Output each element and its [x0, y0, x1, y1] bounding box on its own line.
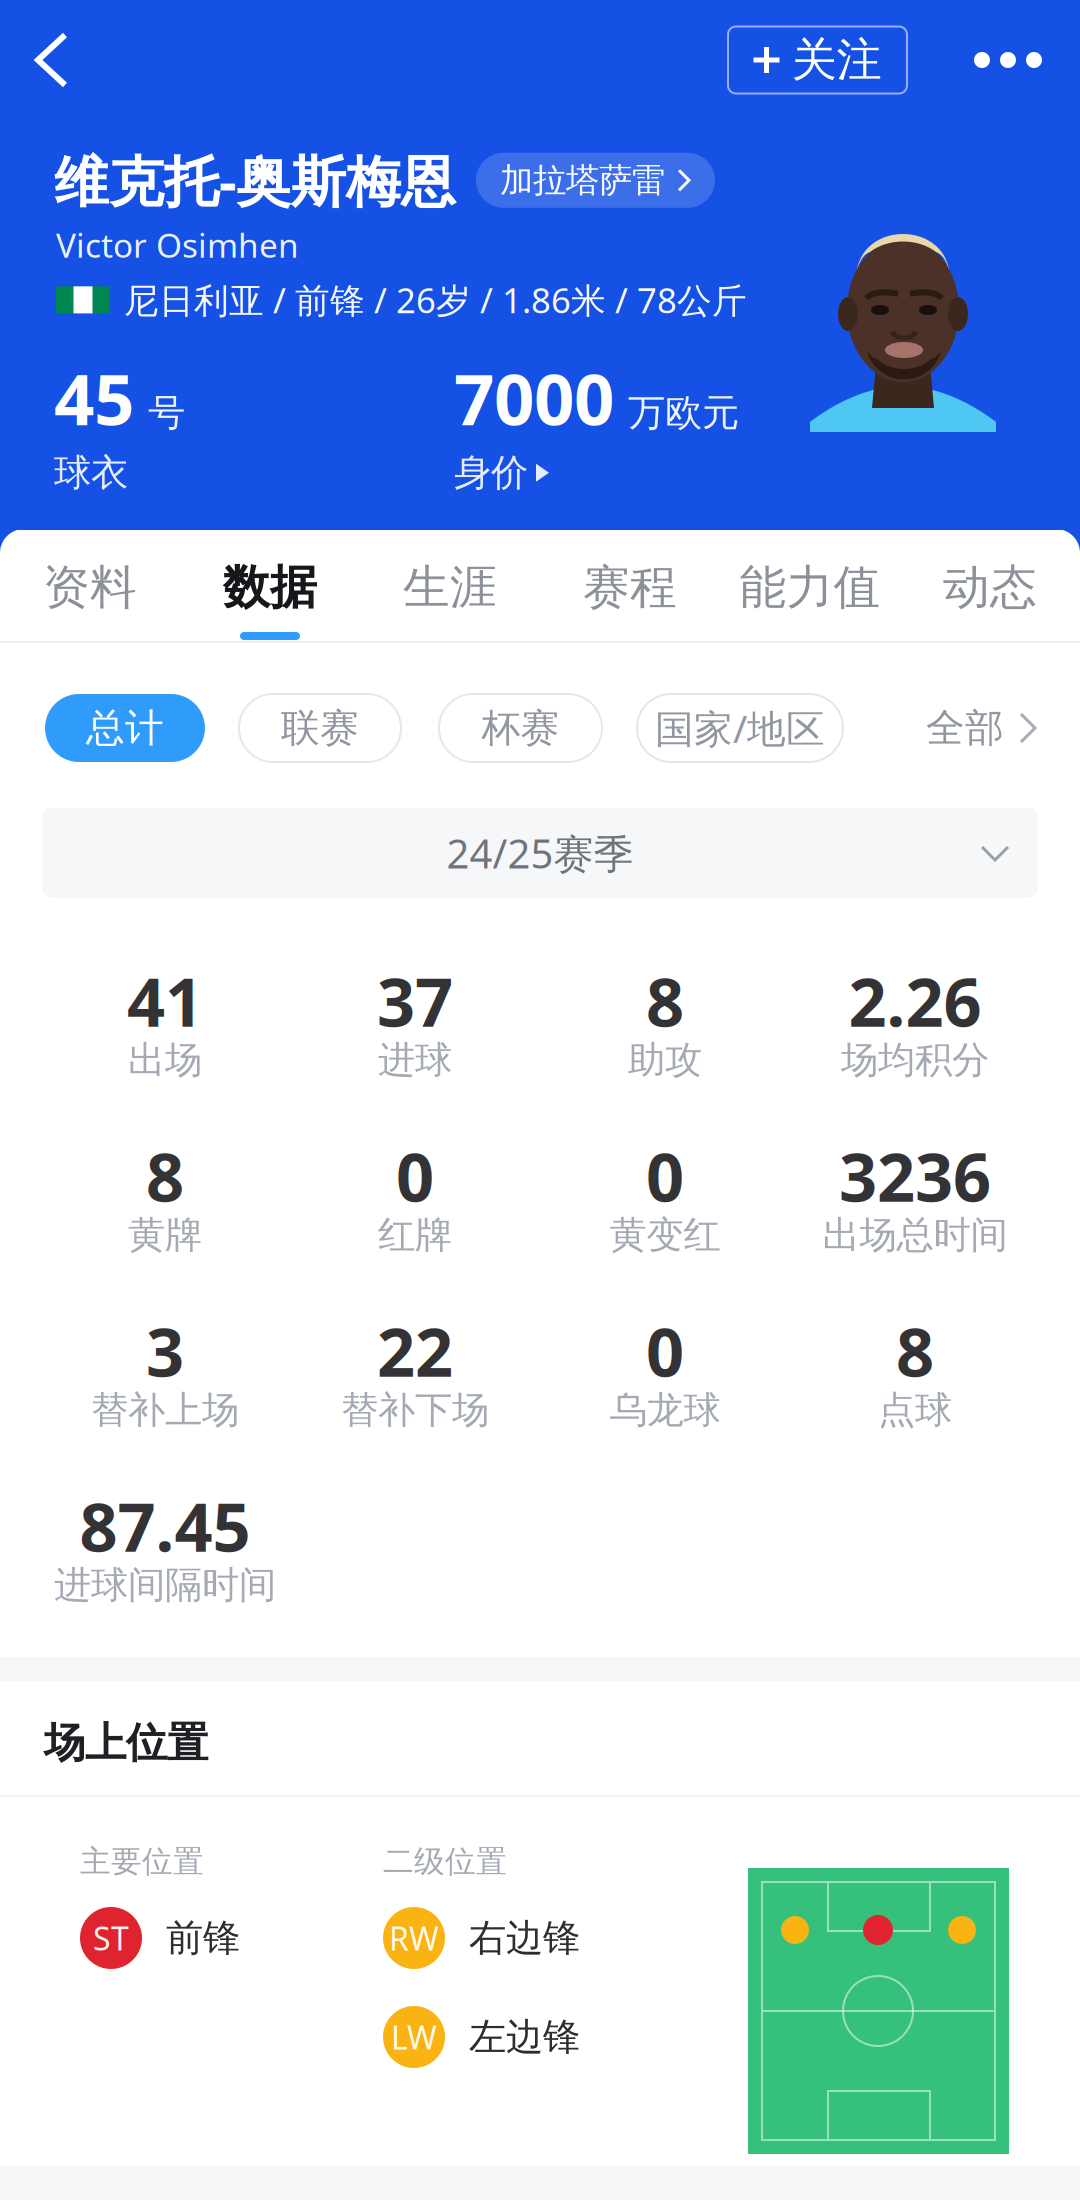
button[interactable]: 关注 [728, 26, 907, 93]
staticText: 41 [127, 957, 203, 1045]
staticText: 数据 [223, 559, 317, 616]
staticText: 进球间隔时间 [54, 1562, 276, 1608]
staticText: 主要位置 [80, 1843, 204, 1880]
button[interactable]: More [953, 24, 1063, 96]
staticText: LW [391, 2016, 437, 2058]
staticText: 关注 [791, 32, 881, 88]
button[interactable]: RW [383, 1907, 580, 1969]
button[interactable]: 联赛 [239, 694, 401, 762]
staticText: 能力值 [739, 559, 880, 616]
staticText: 尼日利亚 / 前锋 / 26岁 / 1.86米 / 78公斤 [124, 277, 747, 323]
staticText: 右边锋 [469, 1915, 580, 1961]
staticText: 场上位置 [44, 1718, 208, 1768]
button[interactable]: 总计 [45, 694, 205, 762]
staticText: 黄牌 [128, 1212, 202, 1258]
staticText: 0 [396, 1132, 434, 1220]
button[interactable]: 7000 [454, 351, 739, 491]
staticText: 8 [646, 957, 684, 1045]
staticText: 22 [377, 1307, 453, 1395]
staticText: 8 [896, 1307, 934, 1395]
button[interactable]: 资料 [0, 530, 180, 641]
staticText: Victor Osimhen [56, 223, 299, 267]
staticText: 资料 [43, 559, 137, 616]
staticText: 45 [54, 351, 134, 445]
button[interactable]: 能力值 [720, 530, 900, 641]
staticText: 红牌 [378, 1212, 452, 1258]
staticText: 球衣 [54, 450, 128, 496]
button[interactable]: 全部 [926, 694, 1038, 762]
button[interactable]: 赛程 [540, 530, 720, 641]
staticText: 黄变红 [609, 1212, 720, 1258]
staticText: 出场 [128, 1037, 202, 1083]
staticText: 7000 [454, 351, 614, 445]
staticText: 前锋 [166, 1915, 240, 1961]
staticText: 杯赛 [481, 704, 559, 752]
button[interactable]: 国家/地区 [637, 694, 843, 762]
staticText: 二级位置 [383, 1843, 507, 1880]
button[interactable]: LW [383, 2006, 580, 2068]
staticText: 3 [146, 1307, 184, 1395]
staticText: 场均积分 [841, 1037, 989, 1083]
staticText: 号 [148, 390, 185, 436]
button[interactable]: Back [20, 22, 104, 98]
staticText: 生涯 [403, 559, 497, 616]
staticText: 联赛 [281, 704, 359, 752]
staticText: 赛程 [583, 559, 677, 616]
staticText: 助攻 [628, 1037, 702, 1083]
staticText: 乌龙球 [609, 1387, 720, 1433]
button[interactable]: ST [80, 1907, 240, 1969]
staticText: 2.26 [848, 957, 981, 1045]
staticText: 点球 [878, 1387, 952, 1433]
staticText: 进球 [378, 1037, 452, 1083]
staticText: 替补上场 [91, 1387, 239, 1433]
button[interactable]: 24/25赛季 [42, 808, 1038, 898]
staticText: 8 [146, 1132, 184, 1220]
staticText: 全部 [926, 704, 1004, 752]
staticText: 加拉塔萨雷 [500, 160, 665, 201]
staticText: 37 [377, 957, 453, 1045]
button[interactable]: 生涯 [360, 530, 540, 641]
staticText: 身价 [454, 450, 528, 496]
staticText: ST [93, 1917, 129, 1959]
button[interactable]: 数据 [180, 530, 360, 641]
staticText: 24/25赛季 [446, 826, 633, 879]
button[interactable]: 动态 [900, 530, 1080, 641]
staticText: 万欧元 [628, 390, 739, 436]
staticText: 0 [646, 1307, 684, 1395]
staticText: 3236 [839, 1132, 991, 1220]
staticText: 87.45 [79, 1482, 250, 1570]
staticText: 0 [646, 1132, 684, 1220]
staticText: 总计 [86, 704, 164, 752]
button[interactable]: 加拉塔萨雷 [476, 153, 715, 208]
staticText: RW [389, 1917, 439, 1959]
staticText: 国家/地区 [655, 702, 825, 754]
staticText: 左边锋 [469, 2014, 580, 2060]
staticText: 维克托-奥斯梅恩 [54, 144, 456, 217]
staticText: 替补下场 [341, 1387, 489, 1433]
staticText: 动态 [943, 559, 1037, 616]
button[interactable]: 杯赛 [439, 694, 602, 762]
staticText: 出场总时间 [822, 1212, 1007, 1258]
